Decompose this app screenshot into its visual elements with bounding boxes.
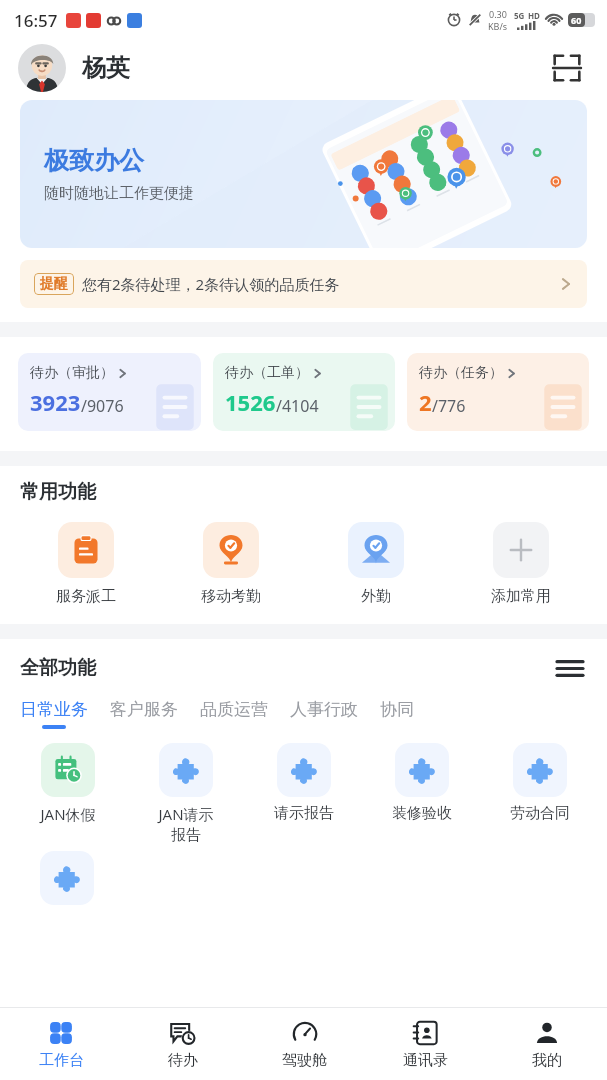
staticText: 人事行政 xyxy=(290,699,358,720)
staticText: 极致办公 xyxy=(44,145,144,176)
button[interactable]: 客户服务 xyxy=(110,699,178,729)
staticText: 提醒 xyxy=(40,275,68,293)
staticText: 移动考勤 xyxy=(201,587,261,606)
button[interactable]: 驾驶舱 xyxy=(244,1008,365,1080)
staticText: 0.30 xyxy=(489,8,507,20)
staticText: 待办 xyxy=(168,1051,198,1070)
staticText: 杨英 xyxy=(82,53,130,83)
staticText: 添加常用 xyxy=(491,587,551,606)
staticText: JAN休假 xyxy=(40,804,96,824)
staticText: 驾驶舱 xyxy=(282,1051,327,1070)
button[interactable]: 添加常用 xyxy=(448,522,593,606)
staticText: 随时随地让工作更便捷 xyxy=(44,184,194,203)
button[interactable] xyxy=(18,44,66,92)
button[interactable]: 工作台 xyxy=(0,1008,122,1080)
staticText: 您有2条待处理，2条待认领的品质任务 xyxy=(82,274,340,294)
button[interactable]: 待办 xyxy=(122,1008,244,1080)
button[interactable]: 待办（审批） xyxy=(18,353,201,431)
button[interactable]: 通讯录 xyxy=(365,1008,486,1080)
staticText: 请示报告 xyxy=(274,804,334,823)
staticText: 品质运营 xyxy=(200,699,268,720)
button[interactable]: 协同 xyxy=(380,699,414,729)
staticText: KB/s xyxy=(488,20,508,32)
button[interactable]: Scan xyxy=(545,46,589,90)
button[interactable]: 劳动合同 xyxy=(481,743,599,823)
staticText: 16:57 xyxy=(14,9,58,32)
staticText: HD xyxy=(528,10,540,21)
button[interactable]: More functions xyxy=(553,651,587,685)
button[interactable]: 人事行政 xyxy=(290,699,358,729)
staticText: 劳动合同 xyxy=(510,804,570,823)
staticText: 常用功能 xyxy=(20,480,96,504)
button[interactable]: 极致办公 xyxy=(20,100,587,248)
staticText: 待办（审批） xyxy=(30,364,114,382)
staticText: 协同 xyxy=(380,699,414,720)
staticText: 待办（工单） xyxy=(225,364,309,382)
staticText: 待办（任务） xyxy=(419,364,503,382)
staticText: 通讯录 xyxy=(403,1051,448,1070)
staticText: 日常业务 xyxy=(20,699,88,720)
button[interactable]: 日常业务 xyxy=(20,699,88,729)
button[interactable]: 待办（工单） xyxy=(213,353,395,431)
staticText: 1526 xyxy=(225,387,276,417)
button[interactable]: 待办（任务） xyxy=(407,353,589,431)
button[interactable]: 提醒 xyxy=(20,260,587,308)
staticText: 2 xyxy=(419,387,432,417)
button[interactable]: JAN请示 报告 xyxy=(127,743,245,845)
button[interactable]: 装修验收 xyxy=(363,743,481,823)
button[interactable]: 品质运营 xyxy=(200,699,268,729)
staticText: JAN请示 报告 xyxy=(158,804,214,845)
button[interactable]: 服务派工 xyxy=(14,522,158,606)
staticText: /4104 xyxy=(276,395,319,417)
staticText: 客户服务 xyxy=(110,699,178,720)
button[interactable]: 移动考勤 xyxy=(158,522,303,606)
button[interactable]: 外勤 xyxy=(303,522,448,606)
staticText: 全部功能 xyxy=(20,656,96,680)
staticText: 5G xyxy=(514,10,525,21)
button[interactable]: 我的 xyxy=(486,1008,607,1080)
staticText: /776 xyxy=(432,395,466,417)
staticText: 3923 xyxy=(30,387,81,417)
staticText: 工作台 xyxy=(39,1051,84,1070)
staticText: 60 xyxy=(571,14,582,26)
staticText: 装修验收 xyxy=(392,804,452,823)
button[interactable] xyxy=(8,851,126,905)
button[interactable]: 请示报告 xyxy=(245,743,363,823)
button[interactable]: JAN休假 xyxy=(8,743,127,824)
staticText: 我的 xyxy=(532,1051,562,1070)
staticText: 外勤 xyxy=(361,587,391,606)
staticText: 服务派工 xyxy=(56,587,116,606)
staticText: /9076 xyxy=(81,395,124,417)
